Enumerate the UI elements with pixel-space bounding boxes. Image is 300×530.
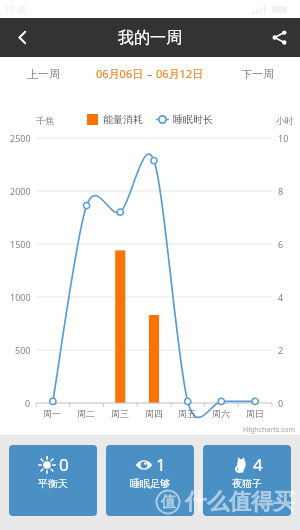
staticText: 06月06日	[96, 66, 144, 81]
staticText: 能量消耗	[103, 113, 143, 126]
button[interactable]: 上一周	[0, 57, 86, 90]
staticText: 0	[25, 397, 31, 409]
button[interactable]: Share	[258, 18, 300, 57]
staticText: 17:45	[4, 3, 28, 15]
staticText: 1000	[10, 291, 31, 303]
staticText: 周四	[145, 408, 163, 419]
staticText: 平衡天	[38, 477, 68, 490]
staticText: –	[144, 66, 156, 81]
staticText: 0	[59, 453, 69, 476]
staticText: 1	[156, 453, 166, 476]
staticText: 值	[161, 493, 176, 512]
staticText: 06月12日	[156, 66, 204, 81]
staticText: 10	[278, 132, 289, 144]
staticText: 小时	[276, 115, 294, 126]
button[interactable]: Back	[0, 18, 44, 57]
staticText: 4	[253, 453, 263, 476]
button[interactable]: 1	[106, 445, 194, 516]
staticText: 6	[278, 238, 284, 250]
staticText: 千焦	[36, 115, 54, 126]
staticText: 周三	[111, 408, 129, 419]
staticText: 8	[278, 185, 284, 197]
button[interactable]: 下一周	[214, 57, 300, 90]
staticText: 1500	[10, 238, 31, 250]
staticText: 2	[278, 344, 284, 356]
staticText: 周一	[43, 408, 61, 419]
staticText: 4	[278, 291, 284, 303]
staticText: Highcharts.com	[243, 425, 296, 435]
staticText: 周五	[178, 408, 196, 419]
staticText: 什么值得买	[185, 488, 295, 516]
button[interactable]: 0	[9, 445, 97, 516]
staticText: 500	[15, 344, 31, 356]
staticText: 睡眠足够	[130, 477, 170, 490]
staticText: 我的一周	[118, 28, 182, 48]
staticText: 周二	[77, 408, 95, 419]
staticText: 上一周	[27, 67, 60, 81]
staticText: 下一周	[241, 67, 274, 81]
staticText: 周日	[246, 408, 264, 419]
staticText: 2000	[10, 185, 31, 197]
staticText: 2500	[10, 132, 31, 144]
staticText: 0	[278, 397, 284, 409]
button[interactable]: 4	[203, 445, 291, 516]
staticText: 夜猫子	[232, 477, 262, 490]
staticText: 周六	[212, 408, 230, 419]
button[interactable]: 06月06日	[96, 66, 204, 81]
staticText: 睡眠时长	[173, 113, 213, 126]
